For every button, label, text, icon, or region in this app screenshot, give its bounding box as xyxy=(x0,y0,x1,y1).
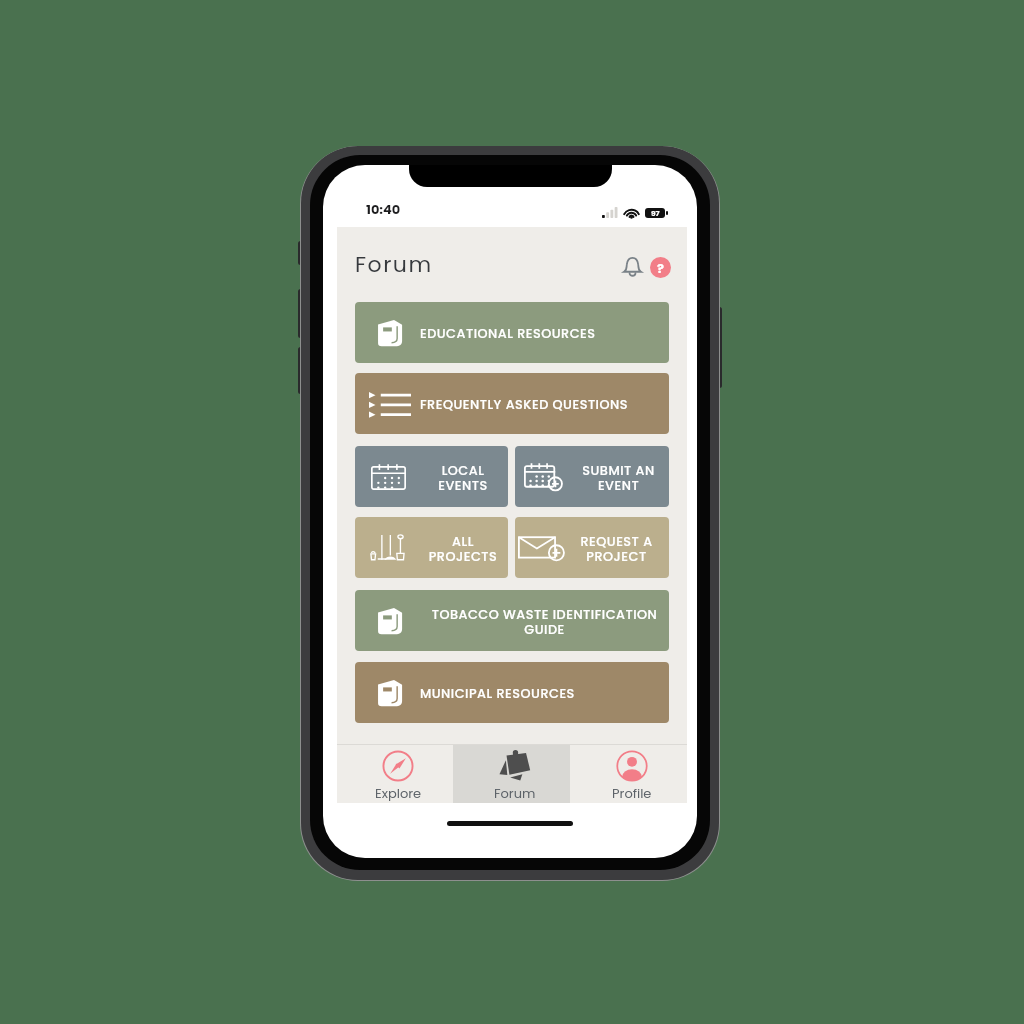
button[interactable]: TOBACCO WASTE IDENTIFICATION GUIDE xyxy=(355,590,669,651)
button[interactable]: EDUCATIONAL RESOURCES xyxy=(355,302,669,363)
button[interactable]: MUNICIPAL RESOURCES xyxy=(355,662,669,723)
staticText: LOCAL EVENTS xyxy=(421,462,505,494)
staticText: EDUCATIONAL RESOURCES xyxy=(420,325,669,343)
staticText: Forum xyxy=(494,784,536,802)
staticText: Explore xyxy=(375,784,422,802)
button[interactable]: ALL PROJECTS xyxy=(355,517,508,578)
staticText: Forum xyxy=(355,249,433,280)
staticText: ALL PROJECTS xyxy=(421,533,505,565)
staticText: Profile xyxy=(612,784,652,802)
button[interactable]: Explore xyxy=(337,745,453,803)
button[interactable]: Profile xyxy=(570,745,687,803)
staticText: 10:40 xyxy=(366,200,401,218)
staticText: 97 xyxy=(651,208,660,218)
button[interactable]: LOCAL EVENTS xyxy=(355,446,508,507)
button[interactable]: Forum xyxy=(453,745,570,803)
staticText: REQUEST A PROJECT xyxy=(567,533,666,565)
button[interactable]: Notifications xyxy=(617,251,647,281)
staticText: MUNICIPAL RESOURCES xyxy=(420,685,669,703)
staticText: SUBMIT AN EVENT xyxy=(571,462,666,494)
button[interactable]: FREQUENTLY ASKED QUESTIONS xyxy=(355,373,669,434)
button[interactable]: Help xyxy=(650,257,671,278)
staticText: ? xyxy=(657,259,664,277)
staticText: FREQUENTLY ASKED QUESTIONS xyxy=(420,396,669,414)
button[interactable]: REQUEST A PROJECT xyxy=(515,517,669,578)
staticText: TOBACCO WASTE IDENTIFICATION GUIDE xyxy=(420,606,669,638)
button[interactable]: SUBMIT AN EVENT xyxy=(515,446,669,507)
